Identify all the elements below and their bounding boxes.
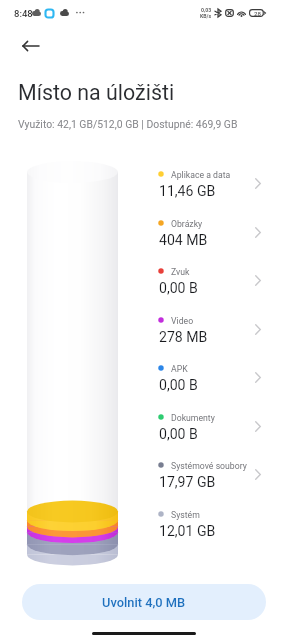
staticText: 278 MB — [159, 329, 208, 346]
staticText: Systémové soubory — [171, 461, 247, 471]
button[interactable]: Video — [152, 308, 272, 352]
staticText: 0,00 B — [159, 426, 198, 443]
button[interactable]: Zvuk — [152, 259, 272, 303]
staticText: 0,03 — [201, 7, 212, 13]
staticText: 0,00 B — [159, 377, 198, 394]
staticText: 28 — [254, 10, 262, 17]
staticText: 8:48 — [14, 8, 33, 19]
button[interactable]: Obrázky — [152, 211, 272, 255]
button[interactable]: APK — [152, 356, 272, 400]
staticText: Využito: 42,1 GB/512,0 GB | Dostupné: 46… — [18, 118, 238, 130]
button[interactable]: Systémové soubory — [152, 453, 272, 497]
staticText: Obrázky — [171, 219, 203, 229]
staticText: 0,00 B — [159, 280, 198, 297]
button[interactable]: Dokumenty — [152, 405, 272, 449]
button[interactable]: Back — [11, 26, 51, 66]
staticText: Uvolnit 4,0 MB — [102, 595, 186, 610]
staticText: Video — [171, 316, 194, 326]
staticText: 404 MB — [159, 232, 208, 249]
button[interactable]: Uvolnit 4,0 MB — [22, 584, 266, 620]
button[interactable]: Systém — [152, 502, 272, 546]
staticText: Aplikace a data — [171, 170, 231, 180]
staticText: KB/s — [200, 13, 212, 19]
staticText: Dokumenty — [171, 413, 215, 423]
staticText: Místo na úložišti — [18, 80, 175, 105]
staticText: APK — [171, 364, 188, 374]
staticText: 17,97 GB — [159, 474, 216, 491]
staticText: 12,01 GB — [159, 523, 216, 540]
staticText: Zvuk — [171, 267, 190, 277]
staticText: 11,46 GB — [159, 183, 216, 200]
staticText: Systém — [171, 510, 200, 520]
button[interactable]: Aplikace a data — [152, 162, 272, 206]
